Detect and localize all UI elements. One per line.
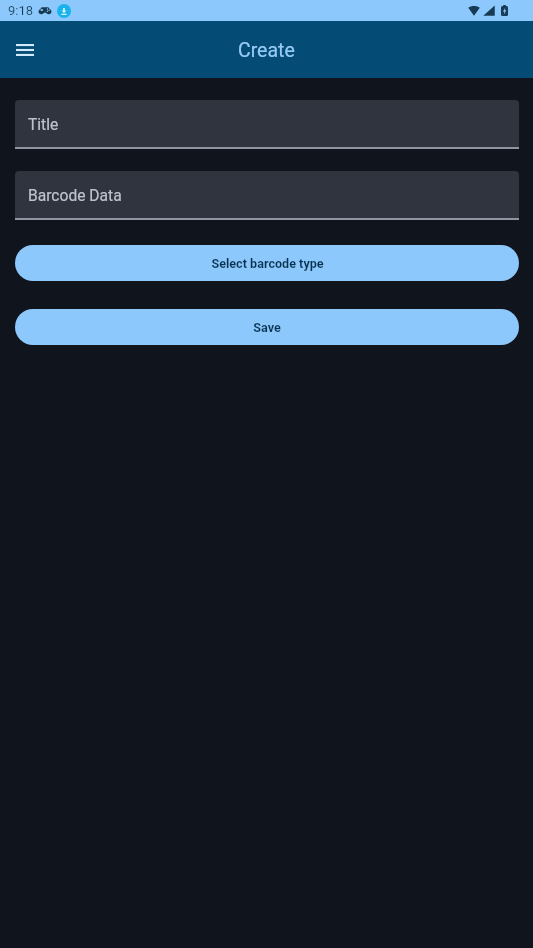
button[interactable]: Save [15,309,519,345]
button[interactable]: Title [15,100,519,147]
button[interactable]: Open navigation drawer [5,30,45,70]
staticText: Create [238,39,295,62]
button[interactable]: Barcode Data [15,171,519,218]
staticText: 9:18 [8,3,34,18]
staticText: Title [28,116,59,134]
button[interactable]: Select barcode type [15,245,519,281]
staticText: Select barcode type [211,256,324,271]
staticText: Barcode Data [28,187,122,205]
staticText: Save [253,320,281,335]
